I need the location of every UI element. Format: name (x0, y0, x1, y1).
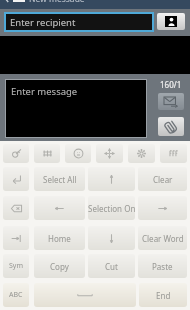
staticText: Paste (152, 261, 173, 272)
button[interactable]: Enter recipient (6, 14, 152, 30)
button[interactable]: Right (138, 196, 187, 220)
staticText: Select All (43, 174, 77, 185)
staticText: New message (29, 0, 85, 2)
button[interactable]: Enter message (6, 80, 146, 137)
staticText: Selection On (88, 203, 135, 214)
button[interactable]: ABC (3, 283, 29, 307)
staticText: 160/1 (160, 79, 182, 90)
button[interactable]: Navigate up (0, 0, 13, 2)
staticText: Home (48, 233, 71, 244)
button[interactable]: Keyboard settings (128, 144, 155, 163)
button[interactable]: Up (88, 167, 135, 191)
button[interactable]: Paste (138, 254, 187, 278)
staticText: Enter message (11, 85, 78, 98)
staticText: ABC (9, 290, 23, 300)
button[interactable]: Handwriting (3, 144, 29, 163)
staticText: Copy (50, 261, 69, 272)
button[interactable]: Send message (158, 93, 184, 110)
button[interactable]: Enter (3, 167, 29, 191)
button[interactable]: Attach file (158, 117, 184, 136)
staticText: End (156, 290, 171, 301)
button[interactable]: Left (34, 196, 85, 220)
button[interactable]: Copy (34, 254, 85, 278)
button[interactable]: Emoticons (65, 144, 91, 163)
staticText: Cut (105, 261, 118, 272)
button[interactable]: Move keyboard (96, 144, 123, 163)
staticText: Sym (9, 261, 23, 271)
button[interactable]: Sym (3, 254, 29, 278)
button[interactable]: Home (34, 226, 85, 250)
button[interactable]: Choose contacts (157, 13, 185, 30)
staticText: Enter recipient (10, 16, 76, 29)
button[interactable]: Select All (34, 167, 85, 191)
staticText: Clear Word (142, 233, 184, 244)
button[interactable]: Font size (160, 144, 187, 163)
button[interactable]: End (139, 283, 187, 307)
button[interactable]: Selection On (88, 196, 135, 220)
button[interactable]: Backspace (3, 196, 29, 220)
button[interactable]: Cut (88, 254, 135, 278)
button[interactable]: Keyboard layout (34, 144, 60, 163)
button[interactable]: Clear Word (138, 226, 187, 250)
staticText: Clear (153, 174, 173, 185)
button[interactable]: Clear (138, 167, 187, 191)
button[interactable]: Tab (3, 226, 29, 250)
button[interactable]: Down (88, 226, 135, 250)
button[interactable]: Space (34, 283, 136, 307)
